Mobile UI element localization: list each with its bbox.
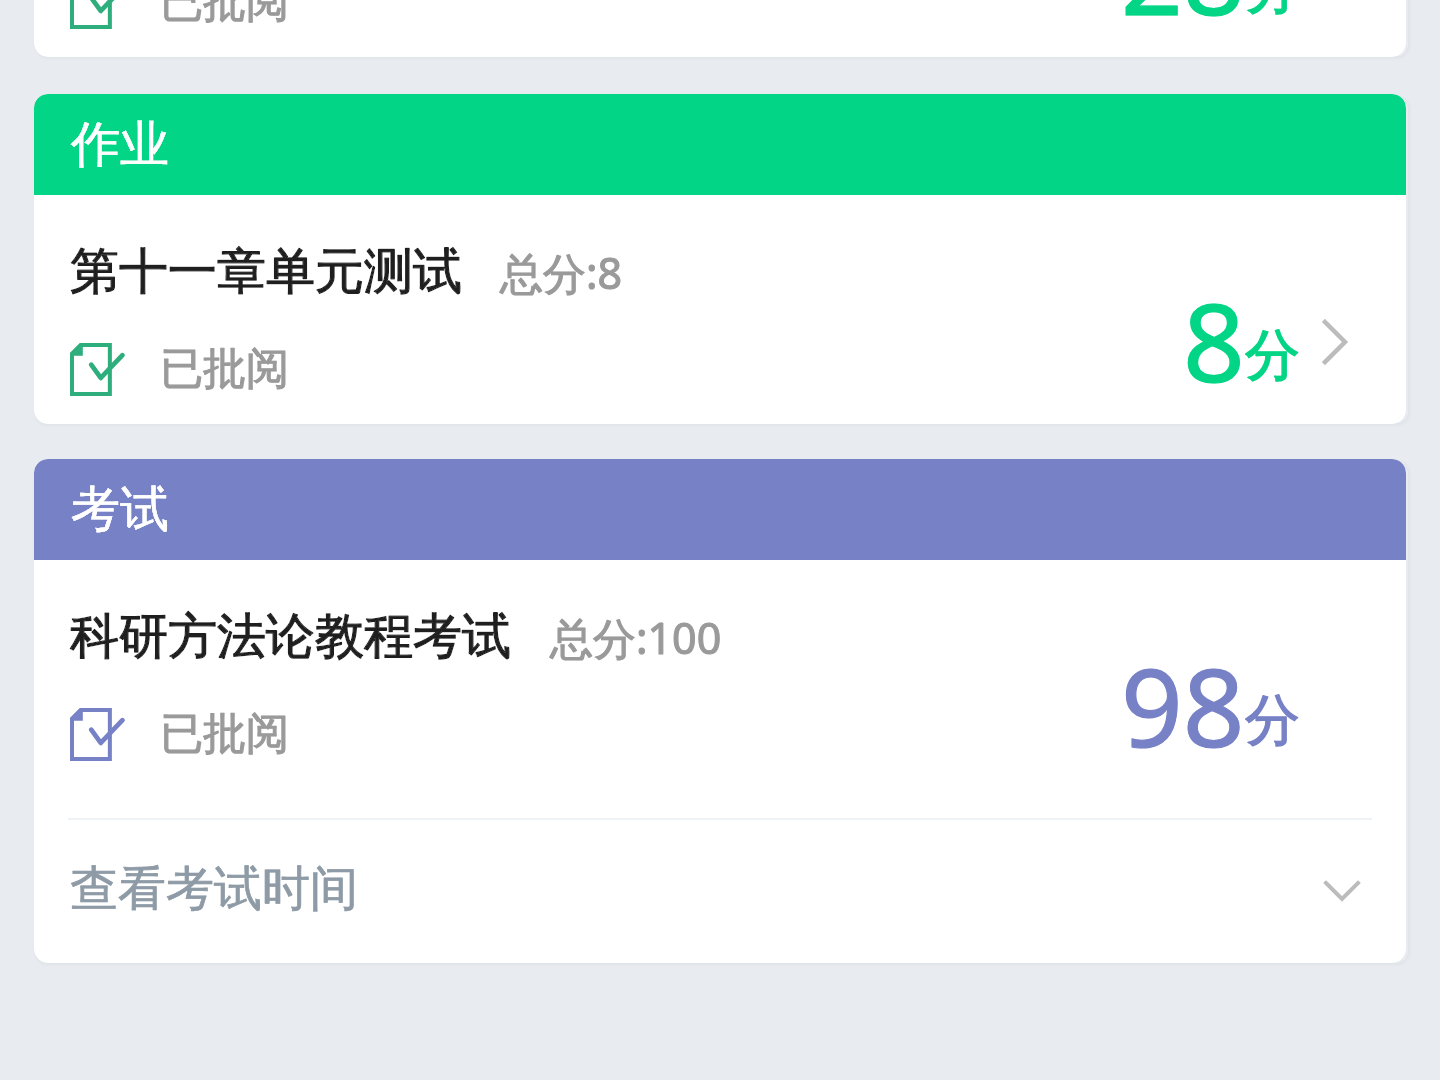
staticText: 已批阅 bbox=[160, 342, 289, 396]
staticText: 考试 bbox=[71, 479, 169, 541]
staticText: 分 bbox=[1245, 321, 1300, 390]
button[interactable]: 第九章单元测试 bbox=[34, 0, 1406, 57]
staticText: 8 bbox=[1183, 267, 1245, 414]
staticText: 第十一章单元测试 bbox=[70, 241, 462, 303]
staticText: 总分:8 bbox=[500, 243, 623, 302]
button[interactable]: 科研方法论教程考试 bbox=[34, 560, 1406, 818]
staticText: 分 bbox=[1245, 321, 1300, 390]
staticText: 28 bbox=[1121, 0, 1245, 47]
staticText: 分 bbox=[1245, 0, 1300, 23]
staticText: 已批阅 bbox=[160, 0, 289, 29]
staticText: 作业 bbox=[71, 114, 169, 176]
staticText: 作业 bbox=[71, 114, 169, 176]
button[interactable]: 查看考试时间 bbox=[34, 820, 1406, 963]
staticText: 分 bbox=[1245, 0, 1300, 23]
staticText: 98 bbox=[1121, 632, 1245, 779]
staticText: 已批阅 bbox=[160, 707, 289, 761]
button[interactable]: 第十一章单元测试 bbox=[34, 195, 1406, 424]
other: Expand exam schedule bbox=[1324, 881, 1360, 901]
staticText: 科研方法论教程考试 bbox=[70, 606, 511, 668]
staticText: 考试 bbox=[71, 479, 169, 541]
staticText: 已批阅 bbox=[160, 0, 289, 29]
staticText: 已批阅 bbox=[160, 342, 289, 396]
staticText: 分 bbox=[1245, 686, 1300, 755]
staticText: 查看考试时间 bbox=[70, 859, 358, 919]
staticText: 总分:100 bbox=[550, 608, 722, 667]
staticText: 科研方法论教程考试 bbox=[70, 606, 511, 668]
staticText: 总分:8 bbox=[500, 243, 623, 302]
staticText: 28 bbox=[1121, 0, 1245, 47]
button[interactable]: 作业 bbox=[34, 94, 1406, 195]
staticText: 分 bbox=[1245, 686, 1300, 755]
staticText: 第十一章单元测试 bbox=[70, 241, 462, 303]
staticText: 98 bbox=[1121, 632, 1245, 779]
button[interactable]: 考试 bbox=[34, 459, 1406, 560]
staticText: 查看考试时间 bbox=[70, 859, 358, 919]
staticText: 8 bbox=[1183, 267, 1245, 414]
staticText: 已批阅 bbox=[160, 707, 289, 761]
other: Open detail bbox=[1323, 320, 1347, 364]
staticText: 总分:100 bbox=[550, 608, 722, 667]
